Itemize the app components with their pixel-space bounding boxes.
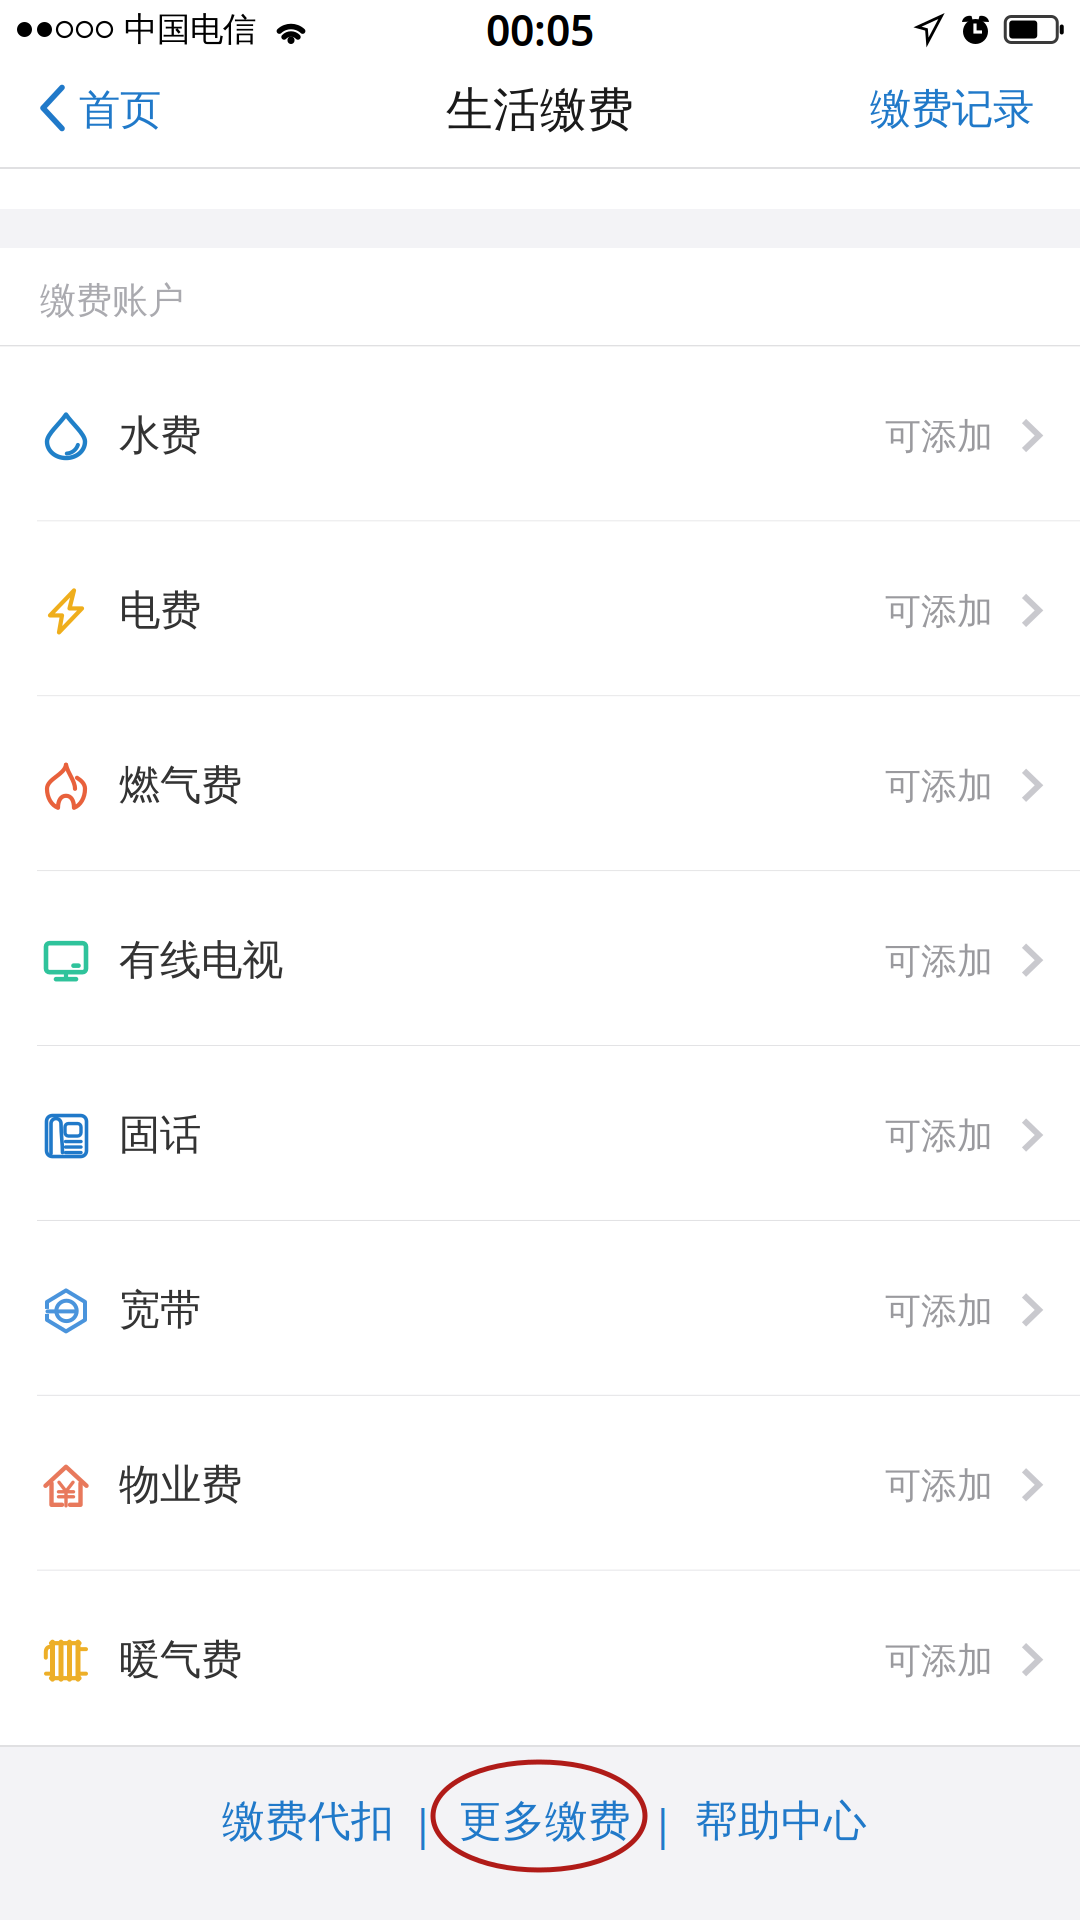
button[interactable]: 电费 [0,521,1080,695]
button[interactable]: 首页 [20,67,181,167]
staticText: 缴费代扣 [222,1795,394,1847]
staticText: 水费 [119,410,201,461]
button[interactable]: 缴费代扣 [204,1771,412,1871]
button[interactable]: 固话 [0,1046,1080,1220]
staticText: 缴费记录 [870,84,1034,134]
button[interactable]: 水费 [0,347,1080,520]
button[interactable]: 更多缴费 [441,1771,649,1871]
staticText: 缴费账户 [40,278,184,323]
button[interactable]: 帮助中心 [677,1771,885,1871]
staticText: | [411,1795,435,1852]
staticText: 可添加 [885,764,993,808]
button[interactable]: 燃气费 [0,696,1080,870]
staticText: 宽带 [119,1284,201,1335]
staticText: 帮助中心 [695,1795,867,1847]
staticText: 首页 [79,85,161,135]
button[interactable]: 物业费 [0,1396,1080,1570]
staticText: | [651,1795,675,1852]
staticText: 可添加 [885,1464,993,1508]
staticText: 可添加 [885,1289,993,1333]
staticText: 物业费 [119,1459,242,1510]
staticText: 可添加 [885,939,993,983]
staticText: 固话 [119,1110,201,1160]
staticText: 有线电视 [119,935,283,986]
staticText: 更多缴费 [459,1795,631,1847]
staticText: 可添加 [885,1114,993,1158]
staticText: 00:05 [486,1,594,58]
staticText: 中国电信 [124,9,256,50]
staticText: 可添加 [885,414,993,459]
staticText: 电费 [119,585,201,636]
staticText: 生活缴费 [446,81,634,139]
button[interactable]: 宽带 [0,1221,1080,1395]
staticText: 燃气费 [119,760,242,811]
staticText: 暖气费 [119,1634,242,1685]
button[interactable]: 有线电视 [0,871,1080,1045]
button[interactable]: 缴费记录 [850,67,1054,167]
button[interactable]: 暖气费 [0,1571,1080,1745]
staticText: 可添加 [885,1639,993,1683]
staticText: 可添加 [885,589,993,633]
